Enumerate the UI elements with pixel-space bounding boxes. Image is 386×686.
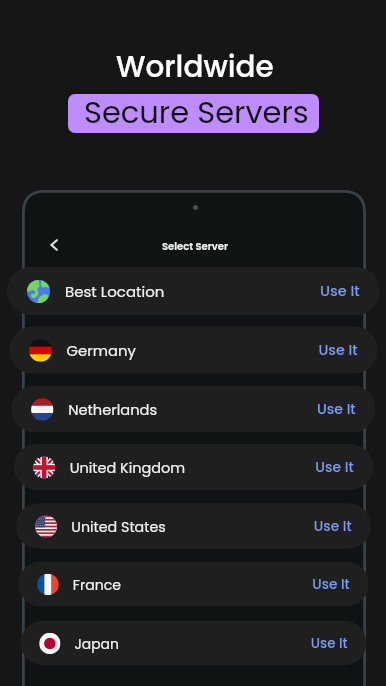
staticText: Best Location (65, 281, 165, 302)
button[interactable]: Back (43, 234, 65, 256)
button[interactable]: United States (16, 503, 371, 549)
button[interactable]: France (18, 561, 369, 607)
staticText: Use It (311, 634, 348, 652)
staticText: Germany (67, 340, 137, 361)
staticText: United Kingdom (70, 457, 185, 478)
button[interactable]: Netherlands (12, 386, 375, 432)
staticText: Use It (315, 457, 354, 477)
button[interactable]: Japan (21, 621, 366, 665)
staticText: Select Server (162, 239, 228, 253)
button[interactable]: Germany (9, 326, 378, 374)
staticText: Use It (318, 340, 358, 360)
button[interactable]: United Kingdom (14, 444, 373, 490)
staticText: Use It (320, 281, 360, 301)
staticText: Worldwide (116, 46, 274, 87)
staticText: Netherlands (68, 399, 158, 420)
button[interactable]: Best Location (7, 267, 380, 315)
staticText: Use It (314, 516, 352, 535)
staticText: Secure Servers (84, 94, 309, 130)
staticText: Japan (74, 634, 119, 653)
staticText: Use It (317, 399, 356, 419)
staticText: United States (71, 516, 166, 536)
staticText: Use It (312, 575, 350, 593)
staticText: France (73, 575, 122, 594)
